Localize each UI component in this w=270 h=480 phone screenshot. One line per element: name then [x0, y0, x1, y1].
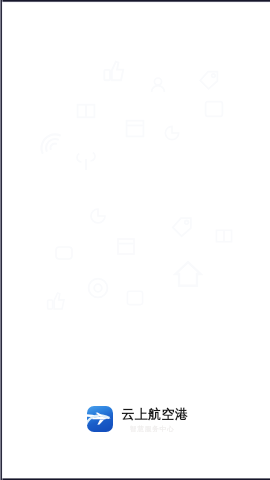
button[interactable]: 云上航空港 logo	[87, 406, 188, 433]
button[interactable]: 云上航空港 logo	[87, 406, 113, 432]
staticText: 智慧服务中心	[130, 425, 175, 433]
staticText: 云上航空港	[121, 406, 188, 422]
